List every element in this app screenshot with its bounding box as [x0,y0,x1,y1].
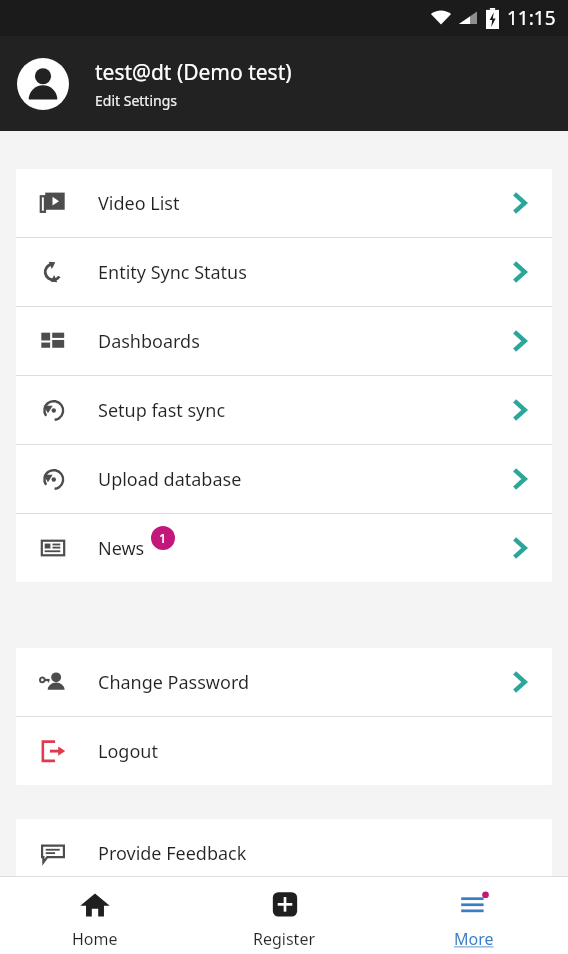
staticText: News [98,536,145,561]
button[interactable]: Entity Sync Status [16,238,552,306]
button[interactable]: Provide Feedback [16,819,552,887]
staticText: Logout [98,739,158,764]
button[interactable]: Setup fast sync [16,376,552,444]
other: Profile [17,58,69,110]
button[interactable]: News [16,514,552,582]
button[interactable]: Profile [0,36,568,131]
staticText: Provide Feedback [98,841,247,866]
button[interactable]: Register [190,877,379,954]
staticText: 11:15 [507,5,556,31]
staticText: Register [253,928,316,950]
button[interactable]: Logout [16,717,552,785]
staticText: Video List [98,191,180,216]
staticText: Entity Sync Status [98,260,247,285]
button[interactable]: Home [0,877,190,954]
button[interactable]: Change Password [16,648,552,716]
staticText: Home [72,928,118,950]
button[interactable]: More [379,877,568,954]
staticText: Change Password [98,670,250,695]
staticText: Setup fast sync [98,398,226,423]
staticText: Dashboards [98,329,200,354]
button[interactable]: Dashboards [16,307,552,375]
staticText: 1 [159,529,167,547]
button[interactable]: Video List [16,169,552,237]
staticText: More [454,928,494,950]
staticText: Edit Settings [95,91,177,110]
button[interactable]: Upload database [16,445,552,513]
staticText: test@dt (Demo test) [95,58,292,87]
staticText: Upload database [98,467,242,492]
